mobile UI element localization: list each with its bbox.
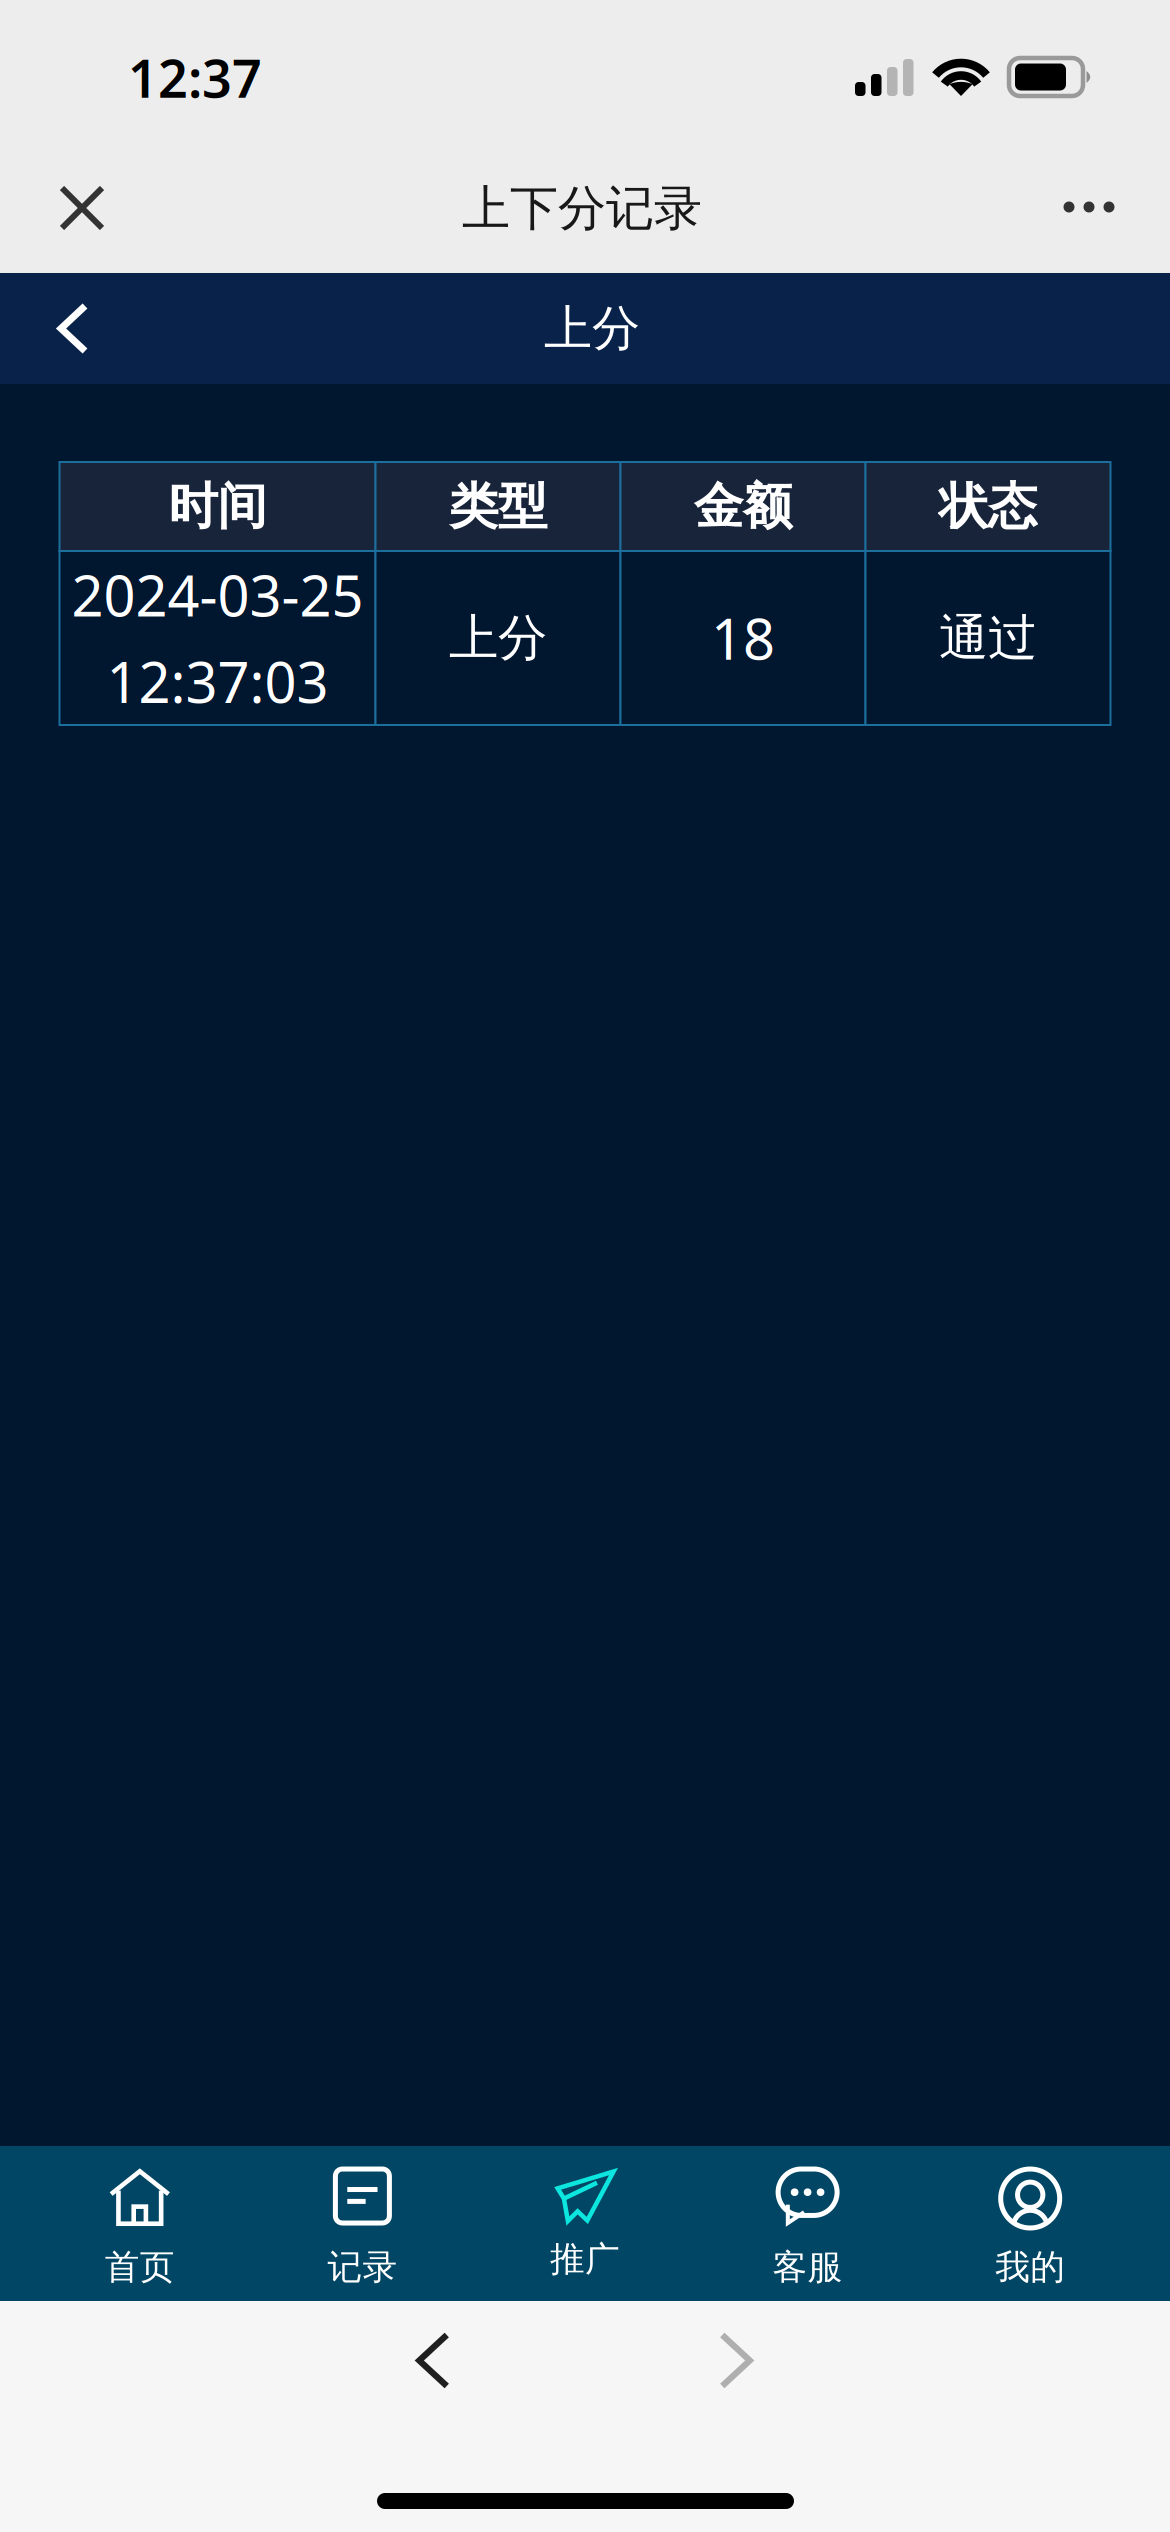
button[interactable]: 记录 <box>251 2146 474 2301</box>
button[interactable]: 首页 <box>28 2146 251 2301</box>
button[interactable]: 更多 <box>1037 165 1141 249</box>
staticText: 18 <box>711 601 775 675</box>
staticText: 我的 <box>995 2246 1065 2289</box>
staticText: 类型 <box>449 476 547 537</box>
staticText: 上分 <box>449 608 547 668</box>
staticText: 金额 <box>694 476 792 537</box>
button[interactable]: 推广 <box>474 2146 696 2301</box>
staticText: 时间 <box>168 476 266 537</box>
staticText: 2024-03-25 <box>71 558 363 632</box>
staticText: 首页 <box>105 2246 175 2289</box>
button[interactable]: 关闭 <box>30 166 134 250</box>
staticText: 客服 <box>773 2246 843 2289</box>
staticText: 12:37 <box>128 43 262 112</box>
staticText: 上分 <box>544 299 640 358</box>
button[interactable]: 返回 <box>25 273 121 384</box>
staticText: 状态 <box>939 476 1037 537</box>
staticText: 12:37:03 <box>106 644 328 718</box>
button[interactable]: 前进 <box>671 2300 801 2420</box>
staticText: 记录 <box>327 2246 397 2289</box>
button[interactable]: 后退 <box>368 2300 498 2420</box>
staticText: 推广 <box>550 2238 620 2281</box>
staticText: 通过 <box>939 608 1037 668</box>
button[interactable]: 客服 <box>696 2146 919 2301</box>
staticText: 上下分记录 <box>462 179 702 238</box>
button[interactable]: 我的 <box>919 2146 1141 2301</box>
